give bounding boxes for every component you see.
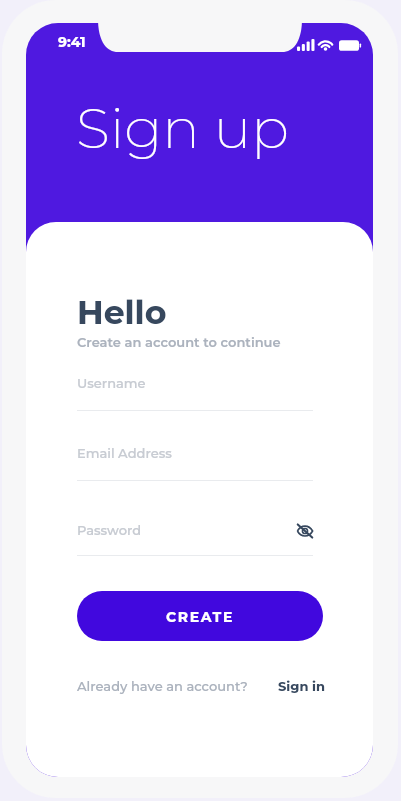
button[interactable]: Sign in <box>278 673 326 689</box>
staticText: Email Address <box>77 445 172 461</box>
staticText: Already have an account? <box>77 678 248 694</box>
staticText: 9:41 <box>58 33 86 50</box>
staticText: Sign up <box>76 94 289 162</box>
staticText: Password <box>77 522 142 538</box>
button[interactable]: CREATE <box>77 591 323 641</box>
staticText: CREATE <box>166 608 234 625</box>
button[interactable]: Toggle password visibility <box>294 520 316 542</box>
staticText: Sign in <box>278 678 326 694</box>
staticText: Username <box>77 375 146 391</box>
staticText: Hello <box>77 292 167 332</box>
staticText: Create an account to continue <box>77 334 281 350</box>
other: Status icons <box>297 38 361 53</box>
